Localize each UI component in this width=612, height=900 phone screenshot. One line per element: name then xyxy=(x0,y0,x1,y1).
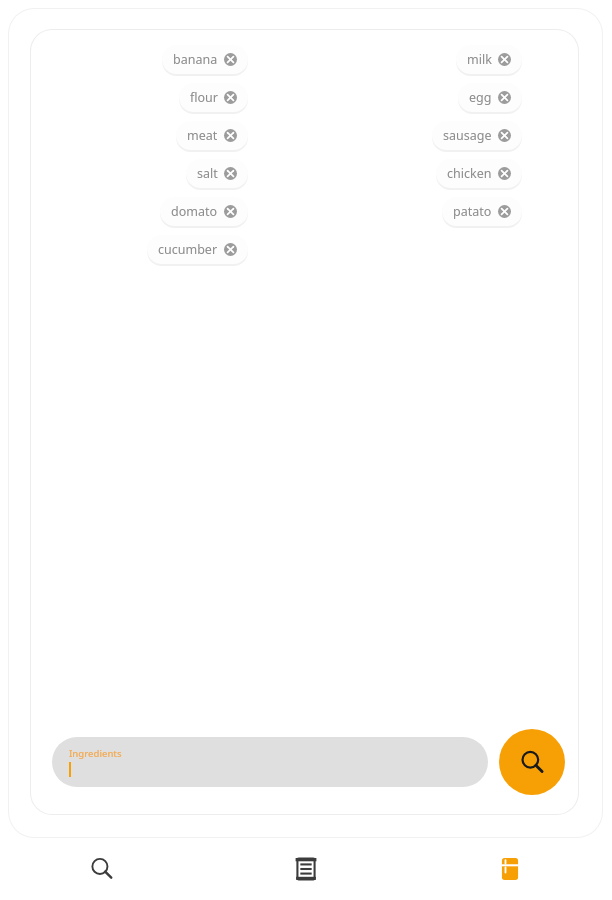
button[interactable]: domato xyxy=(160,197,248,226)
button[interactable]: Ingredients xyxy=(52,737,488,787)
button[interactable]: Search recipes xyxy=(499,729,565,795)
button[interactable]: cucumber xyxy=(147,235,248,264)
button[interactable]: salt xyxy=(186,159,248,188)
staticText: egg xyxy=(469,89,492,106)
staticText: Ingredients xyxy=(69,747,122,760)
staticText: patato xyxy=(453,203,492,220)
staticText: cucumber xyxy=(158,241,218,258)
button[interactable]: milk xyxy=(456,45,522,74)
button[interactable]: banana xyxy=(162,45,248,74)
staticText: flour xyxy=(190,89,218,106)
staticText: milk xyxy=(467,51,492,68)
button[interactable]: Fridge xyxy=(408,838,612,900)
button[interactable]: sausage xyxy=(432,121,522,150)
button[interactable]: Recipes xyxy=(204,838,408,900)
button[interactable]: egg xyxy=(458,83,522,112)
staticText: banana xyxy=(173,51,218,68)
staticText: salt xyxy=(197,165,218,182)
button[interactable]: flour xyxy=(179,83,248,112)
staticText: meat xyxy=(187,127,218,144)
staticText: sausage xyxy=(443,127,492,144)
button[interactable]: Search xyxy=(0,838,204,900)
staticText: domato xyxy=(171,203,218,220)
button[interactable]: meat xyxy=(176,121,248,150)
staticText: chicken xyxy=(447,165,492,182)
button[interactable]: chicken xyxy=(436,159,522,188)
button[interactable]: patato xyxy=(442,197,522,226)
